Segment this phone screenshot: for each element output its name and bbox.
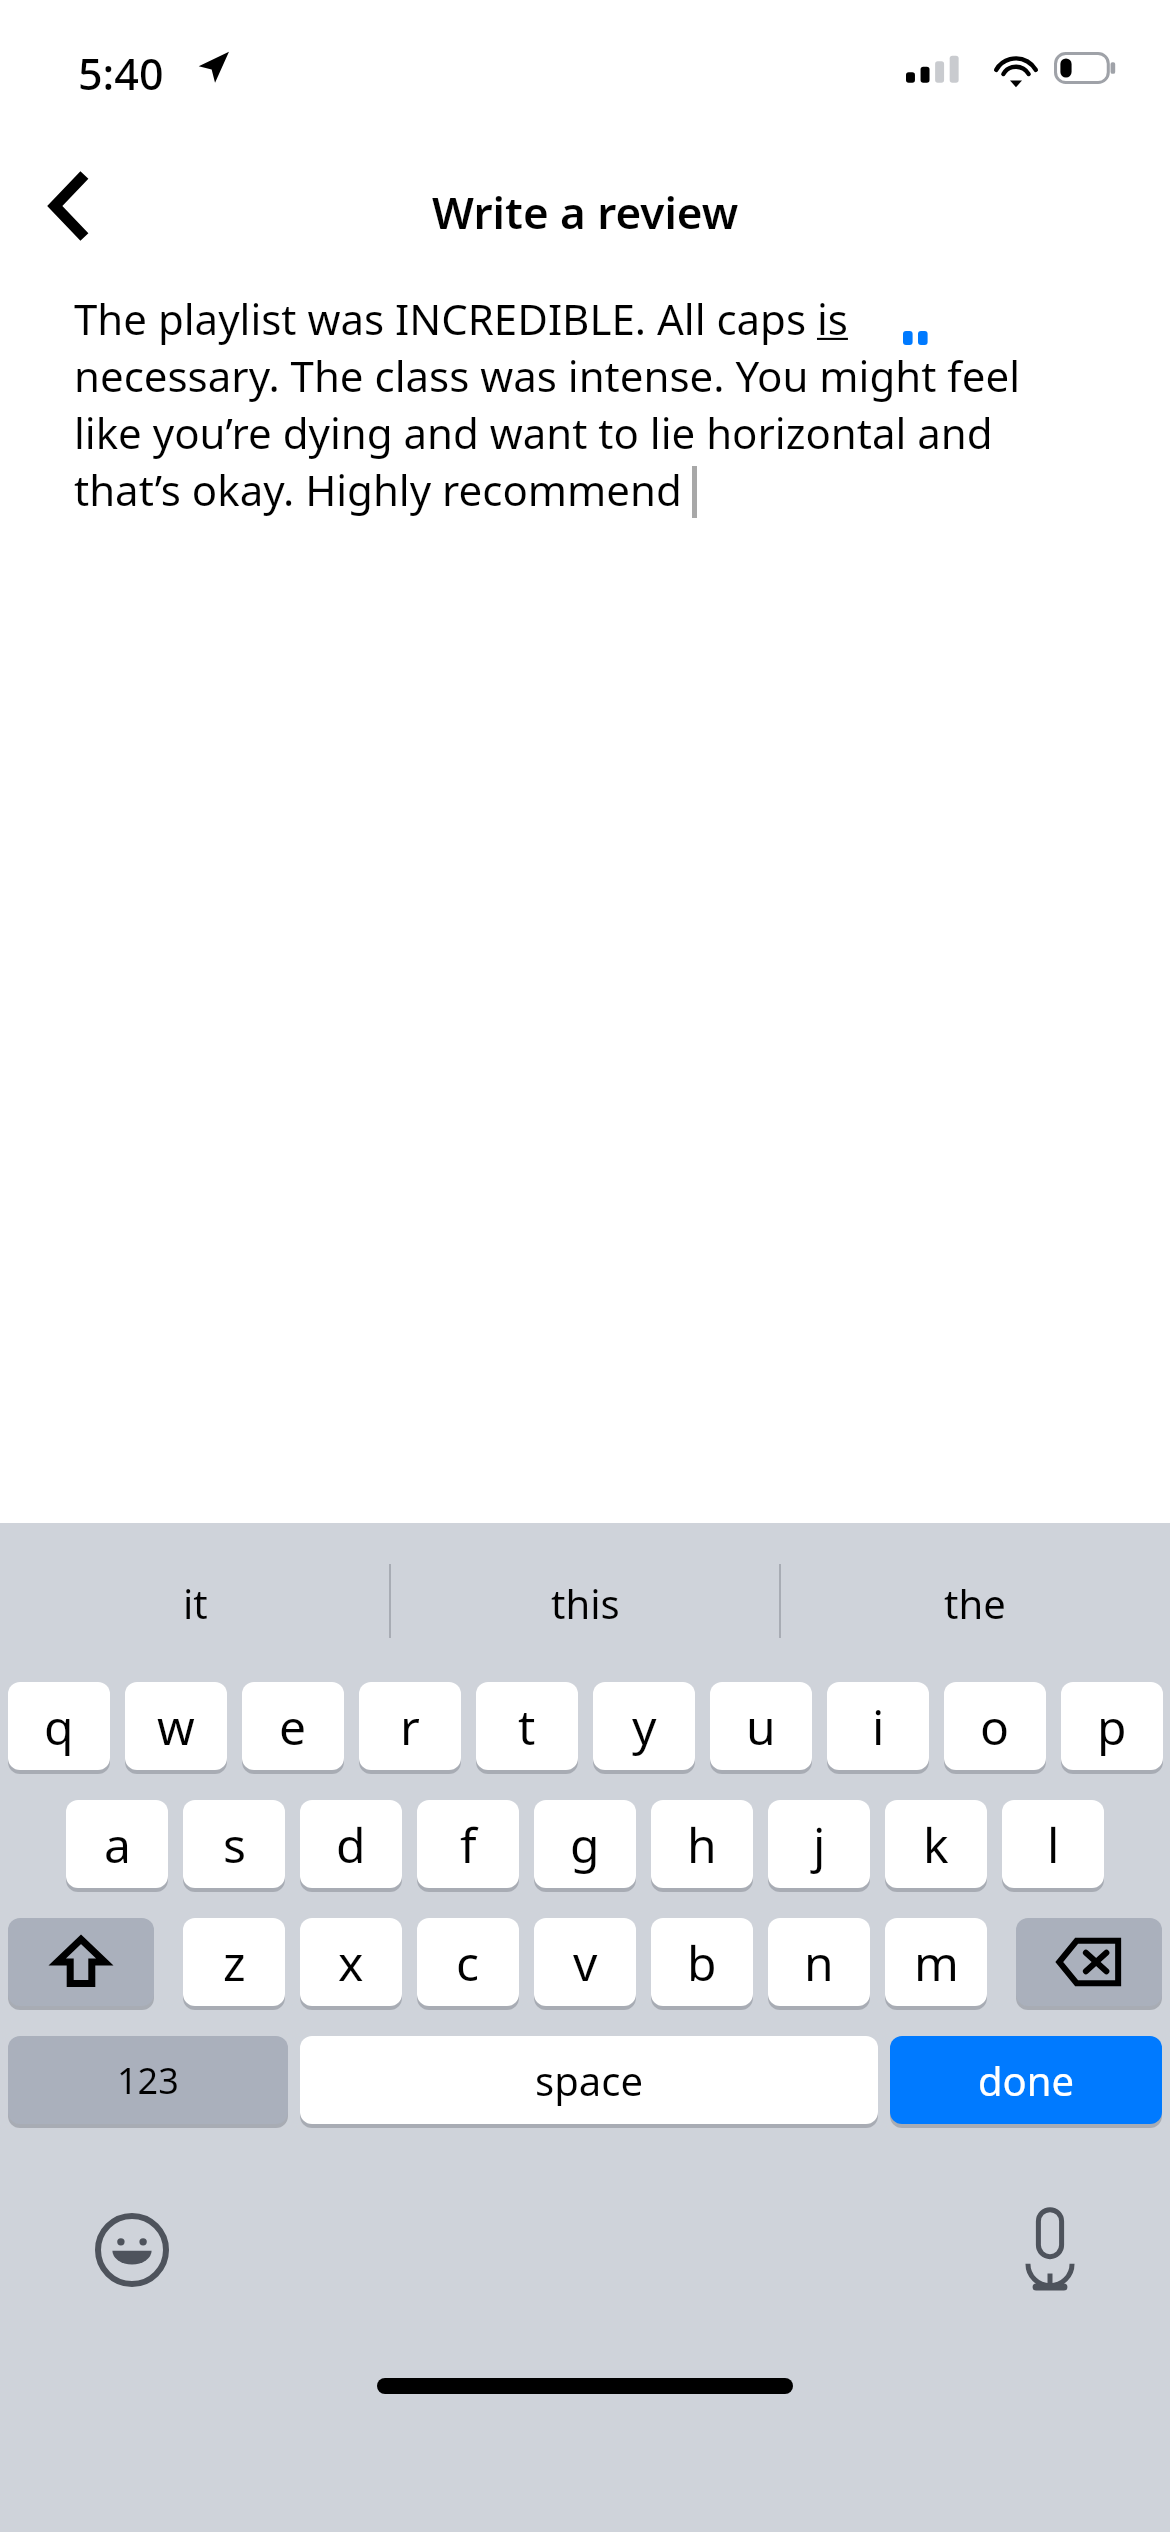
button[interactable]: z [183,1918,285,2006]
staticText: t [518,1694,536,1759]
button[interactable]: s [183,1800,285,1888]
button[interactable]: Emoji keyboard [82,2200,182,2300]
button[interactable]: The playlist was INCREDIBLE. All caps is [74,290,1104,518]
staticText: u [746,1694,776,1759]
staticText: q [44,1694,74,1759]
staticText: r [400,1694,420,1759]
staticText: m [914,1930,959,1995]
staticText: space [535,2053,643,2107]
staticText: it [183,1576,208,1630]
staticText: x [338,1930,364,1995]
button[interactable]: d [300,1800,402,1888]
button[interactable]: x [300,1918,402,2006]
button[interactable]: k [885,1800,987,1888]
button[interactable]: a [66,1800,168,1888]
staticText: Write a review [432,182,739,242]
staticText: e [279,1694,307,1759]
button[interactable]: u [710,1682,812,1770]
staticText: l [1047,1812,1060,1877]
staticText: h [687,1812,717,1877]
button[interactable]: t [476,1682,578,1770]
staticText: a [104,1812,131,1877]
staticText: w [157,1694,195,1759]
button[interactable]: Dictation [1000,2200,1100,2300]
staticText: d [336,1812,366,1877]
button[interactable]: j [768,1800,870,1888]
button[interactable]: w [125,1682,227,1770]
staticText: j [813,1812,826,1877]
staticText: necessary. The class was intense. You mi… [74,347,1020,404]
button[interactable]: space [300,2036,878,2124]
staticText: p [1097,1694,1127,1759]
button[interactable]: this [405,1523,765,1682]
button[interactable]: it [15,1523,375,1682]
staticText: 123 [117,2056,179,2105]
button[interactable]: n [768,1918,870,2006]
staticText: i [872,1694,885,1759]
button[interactable]: o [944,1682,1046,1770]
staticText: z [223,1930,246,1995]
staticText: o [980,1694,1010,1759]
staticText: The playlist was INCREDIBLE. All caps is [74,290,848,347]
button[interactable]: r [359,1682,461,1770]
button[interactable]: h [651,1800,753,1888]
staticText: k [923,1812,949,1877]
button[interactable]: Backspace [1016,1918,1162,2006]
button[interactable]: q [8,1682,110,1770]
staticText: c [456,1930,480,1995]
staticText: n [804,1930,834,1995]
button[interactable]: i [827,1682,929,1770]
button[interactable]: Back [30,168,106,244]
button[interactable]: l [1002,1800,1104,1888]
staticText: done [978,2053,1075,2107]
staticText: y [632,1694,657,1759]
staticText: g [570,1812,600,1877]
button[interactable]: the [795,1523,1155,1682]
staticText: this [551,1576,620,1630]
button[interactable]: p [1061,1682,1163,1770]
button[interactable]: done [890,2036,1162,2124]
button[interactable]: 123 [8,2036,288,2124]
button[interactable]: c [417,1918,519,2006]
staticText: v [573,1930,598,1995]
staticText: f [460,1812,477,1877]
button[interactable]: g [534,1800,636,1888]
button[interactable] [8,1918,154,2006]
staticText: like you’re dying and want to lie horizo… [74,404,993,461]
button[interactable]: y [593,1682,695,1770]
staticText: that’s okay. Highly recommend [74,461,682,518]
staticText: b [687,1930,717,1995]
button[interactable]: m [885,1918,987,2006]
staticText: the [944,1576,1006,1630]
button[interactable]: b [651,1918,753,2006]
staticText: 5:40 [78,44,164,103]
button[interactable]: v [534,1918,636,2006]
button[interactable]: e [242,1682,344,1770]
button[interactable]: f [417,1800,519,1888]
staticText: s [223,1812,246,1877]
